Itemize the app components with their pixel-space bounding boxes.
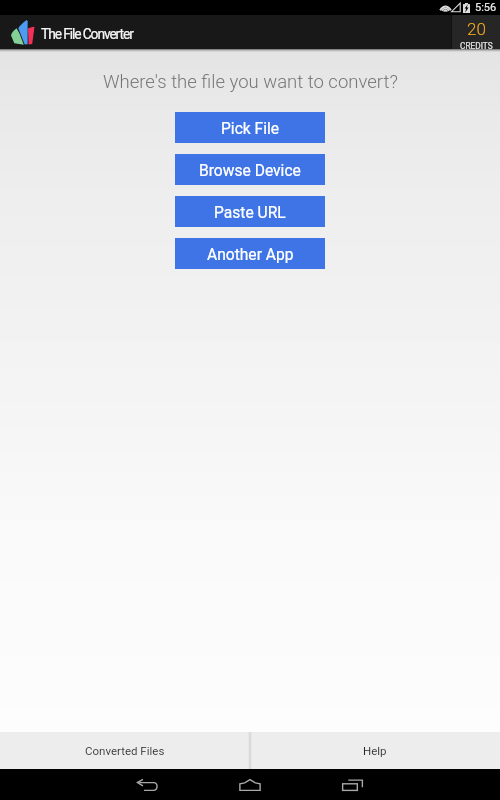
button[interactable]: Home [199, 769, 301, 800]
button[interactable]: Back [97, 769, 199, 800]
staticText: 5:56 [475, 1, 497, 13]
button[interactable]: Another App [175, 238, 325, 269]
staticText: CREDITS [460, 41, 493, 49]
staticText: Where's the file you want to convert? [103, 71, 398, 93]
staticText: Paste URL [214, 204, 286, 222]
staticText: 20 [467, 19, 486, 39]
button[interactable]: 20 [452, 15, 500, 49]
staticText: Help [363, 744, 387, 757]
staticText: Converted Files [85, 744, 165, 757]
staticText: Another App [207, 246, 294, 264]
staticText: Browse Device [199, 162, 301, 180]
button[interactable]: Converted Files [0, 732, 250, 769]
staticText: The File Converter [41, 26, 133, 42]
button[interactable]: Browse Device [175, 154, 325, 185]
button[interactable]: Pick File [175, 112, 325, 143]
button[interactable]: Paste URL [175, 196, 325, 227]
button[interactable]: Recent apps [301, 769, 403, 800]
button[interactable]: Help [250, 732, 500, 769]
staticText: Pick File [221, 120, 280, 138]
